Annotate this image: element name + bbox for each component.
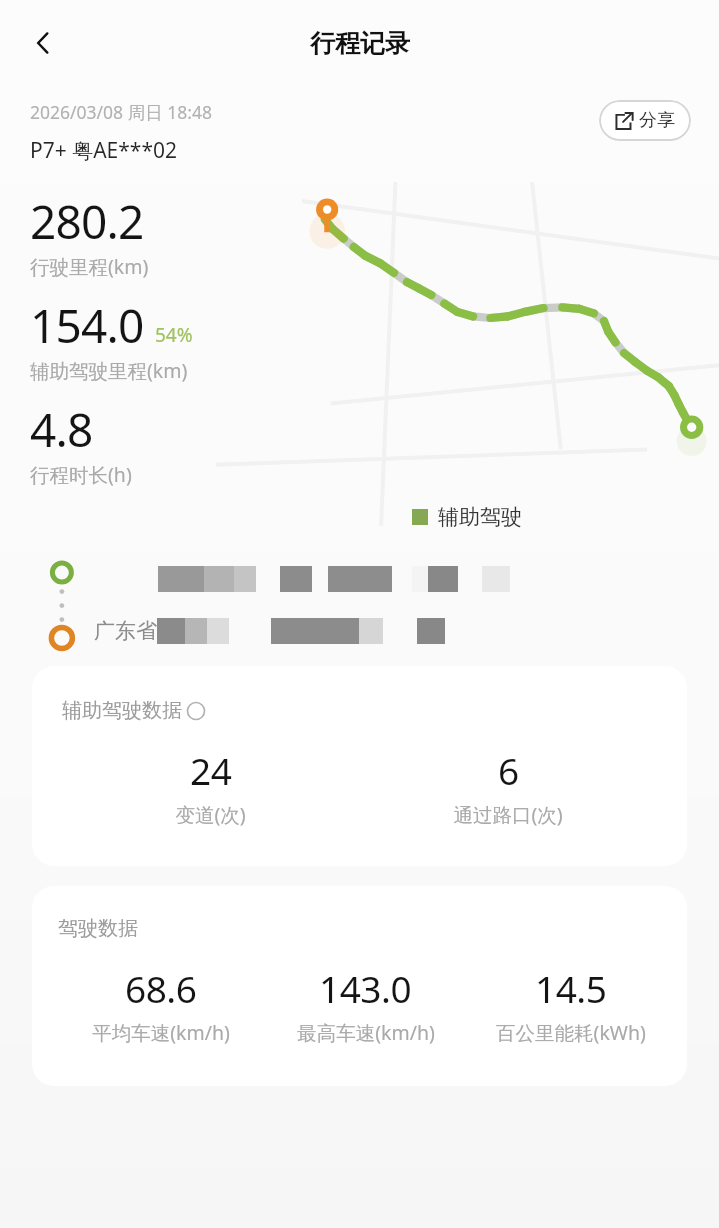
staticText: 54% — [155, 322, 193, 348]
staticText: 行程时长(h) — [30, 461, 132, 488]
staticText: 分享 — [639, 109, 675, 132]
staticText: 行程记录 — [310, 28, 410, 59]
staticText: 4.8 — [30, 398, 93, 461]
staticText: 14.5 — [535, 963, 607, 1013]
staticText: 280.2 — [30, 190, 144, 253]
staticText: 辅助驾驶里程(km) — [30, 357, 188, 384]
button[interactable]: Back — [16, 16, 70, 70]
staticText: 行驶里程(km) — [30, 253, 149, 280]
staticText: 辅助驾驶数据 — [62, 698, 182, 723]
staticText: 广东省 — [94, 618, 157, 644]
staticText: 驾驶数据 — [58, 916, 138, 941]
staticText: 变道(次) — [175, 801, 246, 828]
staticText: 2026/03/08 周日 18:48 — [30, 100, 212, 124]
staticText: 68.6 — [125, 963, 197, 1013]
staticText: 24 — [190, 745, 232, 795]
staticText: 辅助驾驶 — [438, 504, 522, 530]
button[interactable]: 分享 — [599, 100, 691, 141]
button[interactable]: 驾驶数据 — [32, 886, 687, 1086]
staticText: P7+ 粤AE***02 — [30, 136, 178, 165]
staticText: 平均车速(km/h) — [92, 1019, 230, 1046]
staticText: 最高车速(km/h) — [297, 1019, 435, 1046]
staticText: 143.0 — [319, 963, 412, 1013]
staticText: 6 — [498, 745, 519, 795]
button[interactable]: 辅助驾驶数据 — [32, 666, 687, 866]
staticText: 通过路口(次) — [453, 801, 563, 828]
staticText: 154.0 — [30, 294, 144, 357]
staticText: 百公里能耗(kWh) — [496, 1019, 646, 1046]
